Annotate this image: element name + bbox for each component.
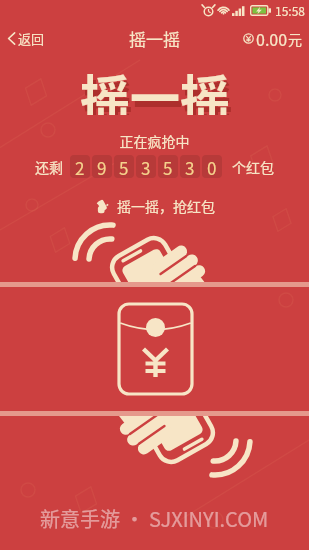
button[interactable]: 0.00 [233, 27, 309, 50]
staticText: 摇一摇，抢红包 [117, 196, 215, 216]
button[interactable]: 返回 [0, 29, 55, 48]
staticText: 元 [288, 29, 302, 49]
staticText: 正在疯抢中 [0, 131, 309, 151]
staticText: 0.00 [256, 27, 288, 50]
staticText: 3 [141, 155, 151, 178]
staticText: 5 [163, 155, 173, 178]
staticText: 个红包 [232, 157, 274, 177]
staticText: 摇一摇 [83, 65, 233, 115]
staticText: 15:58 [275, 2, 305, 19]
staticText: 9 [97, 155, 107, 178]
staticText: 还剩 [35, 157, 63, 177]
staticText: 0 [207, 155, 217, 178]
staticText: 返回 [18, 29, 45, 48]
staticText: 摇一摇 [80, 59, 230, 115]
staticText: 2 [75, 155, 85, 178]
staticText: 摇一摇 [129, 26, 180, 51]
staticText: 3 [185, 155, 195, 178]
staticText: 新意手游 • SJXINYI.COM [40, 504, 269, 533]
staticText: 5 [119, 155, 129, 178]
